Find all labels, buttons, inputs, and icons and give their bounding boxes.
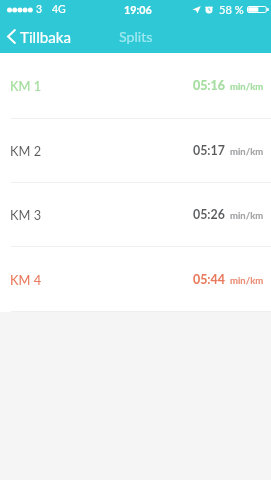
staticText: 3 bbox=[36, 3, 43, 16]
staticText: min/km bbox=[230, 210, 264, 221]
staticText: Splits bbox=[119, 28, 153, 45]
staticText: KM 2 bbox=[10, 143, 42, 158]
staticText: KM 3 bbox=[10, 207, 42, 222]
staticText: 05:44 bbox=[193, 272, 225, 287]
staticText: KM 4 bbox=[10, 272, 42, 287]
staticText: 05:17 bbox=[193, 143, 225, 158]
button[interactable]: KM 2 bbox=[0, 119, 271, 182]
staticText: 19:06 bbox=[124, 3, 152, 16]
staticText: Tillbaka bbox=[20, 28, 72, 46]
staticText: 4G bbox=[52, 3, 66, 16]
button[interactable]: Tillbaka bbox=[0, 22, 82, 52]
staticText: min/km bbox=[230, 146, 264, 157]
button[interactable]: KM 1 bbox=[0, 53, 271, 118]
staticText: 58 % bbox=[219, 3, 244, 16]
button[interactable]: KM 3 bbox=[0, 183, 271, 246]
staticText: min/km bbox=[230, 81, 264, 92]
staticText: KM 1 bbox=[10, 78, 42, 93]
staticText: 05:26 bbox=[193, 207, 225, 222]
button[interactable]: KM 4 bbox=[0, 247, 271, 311]
staticText: min/km bbox=[230, 275, 264, 286]
staticText: 05:16 bbox=[193, 78, 225, 93]
